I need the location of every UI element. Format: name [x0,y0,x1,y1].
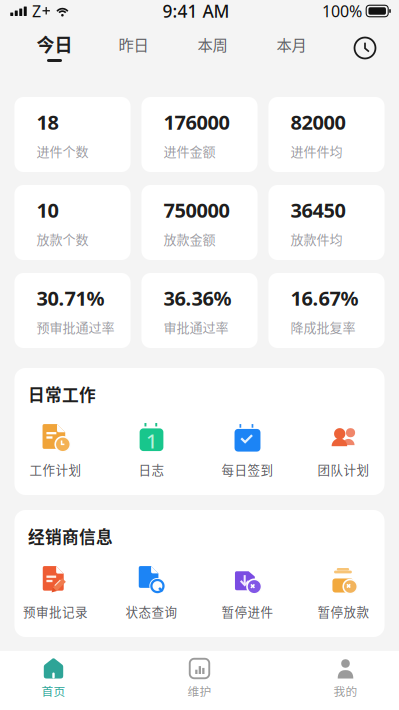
button[interactable]: 状态查询 [103,566,199,618]
staticText: 本月 [276,33,306,55]
button[interactable]: 暂停进件 [199,566,295,618]
staticText: 每日签到 [221,460,273,478]
staticText: 工作计划 [29,460,81,478]
button[interactable]: 工作计划 [7,424,103,476]
button[interactable]: 176000 [141,97,257,172]
staticText: 状态查询 [125,602,177,620]
staticText: 预审批记录 [23,602,88,620]
staticText: 82000 [290,109,345,135]
staticText: 昨日 [118,33,148,55]
staticText: 9:41 AM [162,0,229,22]
staticText: 18 [36,109,58,135]
staticText: 进件金额 [163,141,215,160]
staticText: 放款金额 [163,229,215,248]
staticText: 176000 [163,109,229,135]
button[interactable]: 36.36% [141,273,257,348]
button[interactable]: 16.67% [268,273,384,348]
button[interactable]: 每日签到 [199,424,295,476]
button[interactable]: 30.71% [14,273,130,348]
button[interactable]: 1 [103,424,199,476]
button[interactable]: 团队计划 [295,424,391,476]
staticText: 100% [322,0,362,22]
staticText: 放款个数 [36,229,88,248]
staticText: 审批通过率 [163,317,228,336]
staticText: 10 [36,197,58,223]
staticText: 进件件均 [290,141,342,160]
staticText: 36.36% [163,285,231,311]
staticText: Z [32,0,41,22]
button[interactable]: 首页 [0,658,126,698]
button[interactable]: 我的 [272,658,399,698]
staticText: 团队计划 [317,460,369,478]
button[interactable]: 预审批记录 [7,566,103,618]
staticText: 首页 [41,682,65,699]
staticText: 本周 [197,33,227,55]
staticText: 预审批通过率 [36,317,114,336]
button[interactable]: 暂停放款 [295,566,391,618]
staticText: 750000 [163,197,229,223]
staticText: 1 [146,427,157,454]
button[interactable]: 750000 [141,185,257,260]
button[interactable]: 昨日 [94,28,173,68]
button[interactable]: 维护 [126,658,272,698]
staticText: 放款件均 [290,229,342,248]
button[interactable]: 本周 [173,28,252,68]
button[interactable]: 82000 [268,97,384,172]
staticText: 36450 [290,197,345,223]
button[interactable]: 18 [14,97,130,172]
staticText: 16.67% [290,285,358,311]
staticText: 30.71% [36,285,104,311]
staticText: 暂停放款 [317,602,369,620]
staticText: 日常工作 [28,382,96,406]
staticText: 经销商信息 [28,524,113,548]
staticText: 今日 [36,31,72,57]
staticText: 暂停进件 [221,602,273,620]
button[interactable]: 10 [14,185,130,260]
staticText: 日志 [138,460,164,478]
staticText: 维护 [187,682,211,699]
button[interactable]: 今日 [15,28,94,68]
button[interactable]: 本月 [252,28,331,68]
staticText: 我的 [333,682,357,699]
staticText: 进件个数 [36,141,88,160]
button[interactable]: 36450 [268,185,384,260]
staticText: 降成批复率 [290,317,355,336]
button[interactable]: 历史记录 [348,31,382,65]
